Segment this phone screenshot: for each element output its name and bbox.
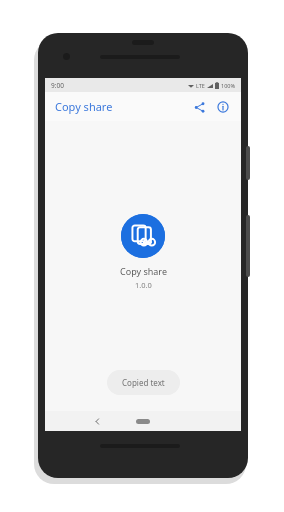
button[interactable]: Share (189, 97, 209, 117)
staticText: Copy share (55, 99, 113, 114)
staticText: LTE (196, 82, 205, 89)
button[interactable]: Copied text (107, 370, 180, 395)
staticText: 9:00 (51, 81, 64, 90)
staticText: Copied text (122, 377, 165, 388)
button[interactable]: Home (136, 419, 150, 424)
staticText: Copy share (120, 265, 167, 277)
button[interactable]: Back (89, 413, 105, 429)
button[interactable]: Info (213, 97, 233, 117)
staticText: 100% (221, 82, 236, 89)
staticText: 1.0.0 (135, 280, 152, 290)
